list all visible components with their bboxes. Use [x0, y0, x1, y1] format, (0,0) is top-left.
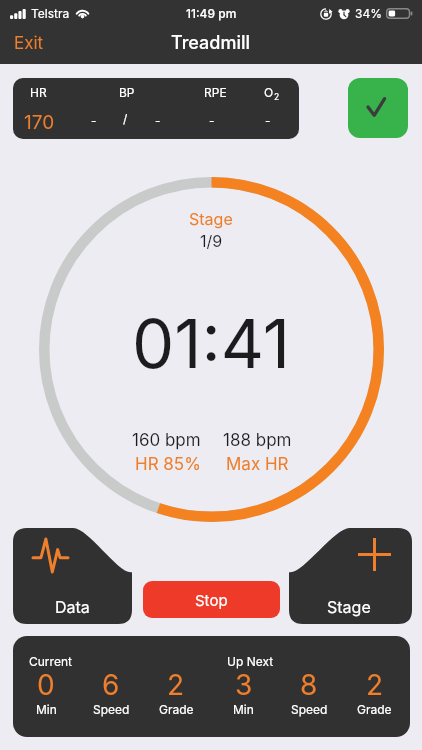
staticText: Stage [327, 597, 371, 616]
staticText: Speed [93, 702, 130, 717]
staticText: Telstra [31, 6, 70, 21]
staticText: 3 [235, 668, 253, 702]
staticText: 8 [300, 668, 318, 702]
staticText: Data [55, 597, 90, 616]
staticText: Max HR [226, 454, 289, 475]
staticText: - [209, 113, 215, 128]
staticText: Up Next [227, 654, 274, 669]
staticText: HR 85% [135, 454, 201, 475]
staticText: HR [30, 85, 47, 100]
staticText: / [123, 111, 128, 126]
staticText: Treadmill [171, 32, 251, 54]
staticText: - [265, 113, 271, 128]
button[interactable]: Add stage [289, 528, 412, 624]
button[interactable]: Data [13, 528, 132, 624]
staticText: Stop [195, 591, 228, 609]
staticText: 2 [366, 668, 384, 702]
button[interactable]: Current [13, 636, 410, 737]
staticText: Stage [189, 209, 233, 228]
staticText: Speed [291, 702, 328, 717]
staticText: 188 bpm [223, 430, 292, 451]
staticText: BP [119, 85, 135, 100]
staticText: 34% [355, 6, 382, 21]
staticText: Grade [159, 702, 194, 717]
button[interactable]: HR [13, 78, 299, 139]
staticText: 11:49 pm [186, 6, 237, 21]
staticText: 1/9 [200, 231, 223, 250]
staticText: RPE [204, 85, 227, 100]
staticText: 160 bpm [132, 430, 201, 451]
button[interactable]: Confirm [348, 78, 408, 138]
button[interactable]: Stop [143, 581, 280, 618]
staticText: - [91, 113, 97, 128]
staticText: 6 [102, 668, 120, 702]
staticText: 170 [24, 111, 55, 134]
staticText: Exit [14, 33, 44, 54]
staticText: Min [233, 702, 254, 717]
staticText: O [264, 85, 274, 100]
staticText: Min [36, 702, 57, 717]
staticText: 2 [274, 92, 280, 102]
staticText: Grade [357, 702, 392, 717]
staticText: - [155, 113, 161, 128]
staticText: Current [29, 654, 72, 669]
staticText: 2 [167, 668, 185, 702]
staticText: 0 [37, 668, 55, 702]
staticText: 01:41 [132, 303, 291, 384]
button[interactable]: Exit [0, 29, 58, 58]
